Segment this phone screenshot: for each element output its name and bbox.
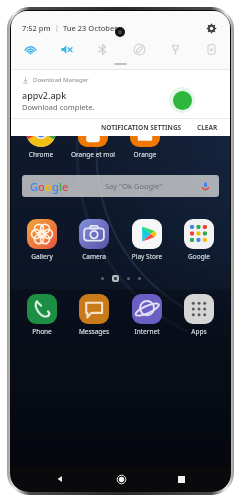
staticText: Say "Ok Google"	[105, 181, 163, 191]
staticText: CLEAR	[197, 123, 218, 132]
staticText: Camera	[68, 252, 120, 261]
other: Voice search	[200, 181, 211, 192]
button[interactable]: Orange	[119, 117, 171, 159]
staticText: o	[45, 179, 52, 194]
button[interactable]: Play Store	[121, 219, 173, 261]
staticText: Tue 23 October	[63, 23, 118, 33]
staticText: 7:52 pm	[22, 23, 51, 33]
button[interactable]: Camera	[68, 219, 120, 261]
button[interactable]: Auto rotate	[129, 39, 149, 59]
staticText: Orange	[119, 150, 171, 159]
staticText: Download complete.	[22, 102, 95, 112]
staticText: NOTIFICATION SETTINGS	[101, 123, 182, 132]
button[interactable]: Recents	[170, 468, 192, 490]
button[interactable]: G	[22, 175, 219, 197]
button[interactable]: Home	[110, 468, 132, 490]
staticText: l	[59, 179, 62, 194]
staticText: |	[55, 23, 59, 33]
button[interactable]: Messages	[68, 294, 120, 336]
staticText: Google	[173, 252, 225, 261]
button[interactable]: Mute	[56, 39, 76, 59]
button[interactable]: Flashlight	[165, 39, 185, 59]
button[interactable]: Bluetooth	[92, 39, 112, 59]
staticText: Download Manager	[33, 76, 89, 84]
button[interactable]: Phone	[16, 294, 68, 336]
button[interactable]: Chrome	[15, 117, 67, 159]
staticText: g	[52, 179, 59, 194]
staticText: Internet	[121, 327, 173, 336]
staticText: G	[30, 179, 38, 194]
button[interactable]: Power saving	[201, 39, 221, 59]
button[interactable]: CLEAR	[194, 121, 221, 134]
staticText: Apps	[173, 327, 225, 336]
button[interactable]: Back	[49, 468, 71, 490]
staticText: Orange et moi	[67, 150, 119, 159]
staticText: Chrome	[15, 150, 67, 159]
staticText: appv2.apk	[22, 89, 67, 101]
staticText: e	[62, 179, 69, 194]
staticText: Messages	[68, 327, 120, 336]
button[interactable]: Internet	[121, 294, 173, 336]
button[interactable]: NOTIFICATION SETTINGS	[98, 121, 185, 134]
button[interactable]: Wi-Fi	[20, 39, 40, 59]
staticText: Play Store	[121, 252, 173, 261]
button[interactable]: Orange et moi	[67, 117, 119, 159]
button[interactable]: Settings	[203, 20, 219, 36]
staticText: o	[38, 179, 45, 194]
staticText: Phone	[16, 327, 68, 336]
staticText: Gallery	[16, 252, 68, 261]
button[interactable]: Google	[173, 219, 225, 261]
button[interactable]: Gallery	[16, 219, 68, 261]
button[interactable]: Apps	[173, 294, 225, 336]
